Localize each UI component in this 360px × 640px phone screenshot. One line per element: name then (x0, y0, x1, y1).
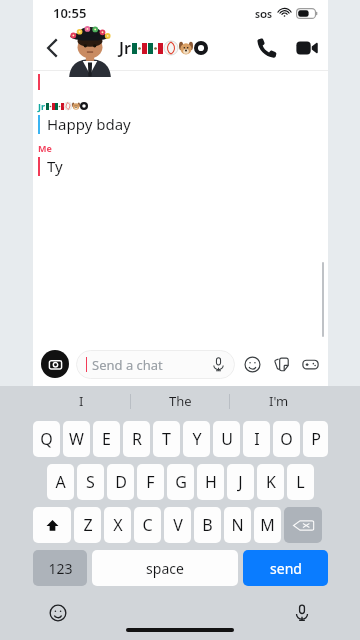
button[interactable]: P (303, 421, 328, 457)
staticText: C (142, 514, 153, 536)
button[interactable]: E (93, 421, 120, 457)
button[interactable]: Voice note (210, 356, 227, 373)
button[interactable]: 123 (33, 550, 87, 586)
button[interactable]: W (63, 421, 90, 457)
staticText: space (146, 559, 184, 578)
button[interactable]: send (243, 550, 328, 586)
button[interactable]: U (213, 421, 240, 457)
staticText: G (175, 471, 187, 493)
button[interactable]: Back (39, 34, 67, 62)
staticText: send (270, 559, 302, 578)
staticText: L (296, 471, 305, 493)
staticText: Q (40, 428, 53, 450)
staticText: I'm (269, 392, 289, 410)
button[interactable]: The (131, 386, 229, 416)
button[interactable]: X (104, 507, 131, 543)
staticText: F (146, 471, 155, 493)
staticText: Y (192, 428, 202, 450)
button[interactable]: O (273, 421, 300, 457)
staticText: 10:55 (53, 4, 87, 22)
staticText: O (280, 428, 293, 450)
staticText: I (254, 428, 260, 450)
button[interactable]: Games (301, 355, 320, 374)
button[interactable]: Y (183, 421, 210, 457)
button[interactable]: Z (74, 507, 101, 543)
staticText: Z (83, 514, 93, 536)
button[interactable]: Bitmoji stickers (272, 355, 291, 374)
button[interactable]: R (123, 421, 150, 457)
button[interactable]: M (254, 507, 281, 543)
button[interactable]: Voice input (292, 603, 312, 623)
button[interactable] (284, 507, 322, 543)
staticText: Jr (119, 37, 131, 59)
button[interactable]: J (227, 464, 254, 500)
staticText: K (266, 471, 276, 493)
staticText: Send a chat (92, 356, 210, 374)
staticText: W (69, 428, 84, 450)
button[interactable]: A (47, 464, 74, 500)
staticText: SOS (255, 8, 273, 20)
button[interactable]: I (243, 421, 270, 457)
staticText: A (55, 471, 66, 493)
staticText: V (173, 514, 183, 536)
button[interactable]: H (197, 464, 224, 500)
button[interactable]: Q (33, 421, 60, 457)
button[interactable]: D (107, 464, 134, 500)
staticText: E (102, 428, 111, 450)
button[interactable]: L (287, 464, 314, 500)
staticText: D (115, 471, 127, 493)
button[interactable]: Voice call (254, 35, 280, 61)
button[interactable]: N (224, 507, 251, 543)
staticText: P (311, 428, 321, 450)
button[interactable]: T (153, 421, 180, 457)
button[interactable]: S (77, 464, 104, 500)
button[interactable]: Send a chat (76, 350, 235, 379)
button[interactable]: G (167, 464, 194, 500)
button[interactable]: Me (38, 142, 63, 176)
staticText: The (169, 392, 192, 410)
staticText: T (162, 428, 171, 450)
staticText: H (205, 471, 217, 493)
staticText: 123 (48, 559, 73, 578)
button[interactable]: Emoji keyboard (48, 603, 68, 623)
button[interactable]: I'm (230, 386, 328, 416)
button[interactable]: Stickers and emoji (243, 355, 262, 374)
staticText: Me (38, 142, 52, 154)
button[interactable]: V (164, 507, 191, 543)
staticText: U (221, 428, 233, 450)
staticText: J (238, 471, 243, 493)
staticText: Happy bday (47, 114, 131, 134)
staticText: R (132, 428, 142, 450)
button[interactable]: I (33, 386, 130, 416)
button[interactable]: F (137, 464, 164, 500)
staticText: B (202, 514, 213, 536)
button[interactable]: Jr (38, 100, 131, 134)
button[interactable]: Profile (64, 25, 116, 77)
button[interactable]: C (134, 507, 161, 543)
button[interactable]: B (194, 507, 221, 543)
staticText: I (79, 392, 84, 410)
button[interactable]: Open camera (41, 350, 69, 378)
staticText: N (231, 514, 244, 536)
button[interactable]: K (257, 464, 284, 500)
staticText: Ty (47, 156, 63, 176)
staticText: S (86, 471, 95, 493)
staticText: Jr (38, 100, 46, 112)
staticText: M (260, 514, 275, 536)
staticText: X (113, 514, 123, 536)
button[interactable]: Video call (294, 35, 320, 61)
button[interactable] (33, 507, 71, 543)
button[interactable]: space (92, 550, 238, 586)
